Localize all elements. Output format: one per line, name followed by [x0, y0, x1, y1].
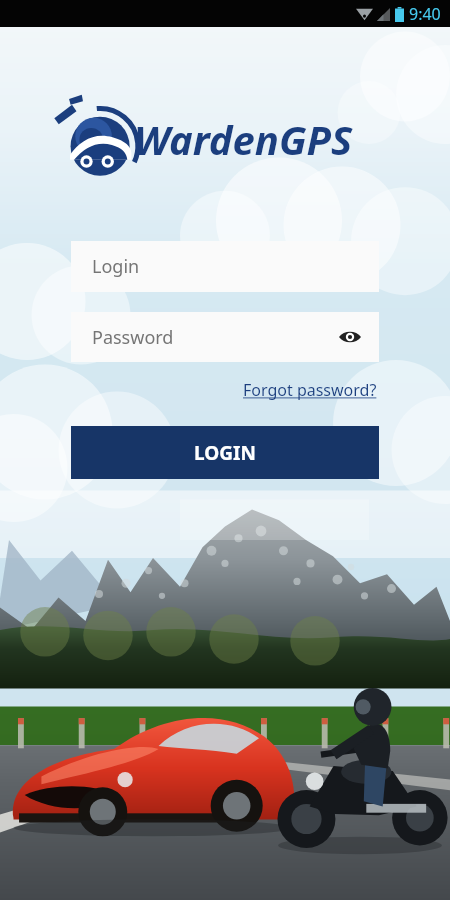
staticText: LOGIN	[194, 440, 256, 466]
staticText: Login	[92, 254, 140, 279]
button[interactable]: Login	[71, 241, 379, 292]
button[interactable]: Forgot password?	[241, 376, 379, 404]
staticText: Forgot password?	[243, 379, 377, 401]
staticText: Password	[92, 325, 174, 350]
staticText: 9:40	[409, 3, 441, 25]
button[interactable]: LOGIN	[71, 426, 379, 479]
button[interactable]: Password	[71, 312, 379, 362]
staticText: WardenGPS	[134, 112, 353, 166]
button[interactable]: Show password	[335, 322, 365, 352]
